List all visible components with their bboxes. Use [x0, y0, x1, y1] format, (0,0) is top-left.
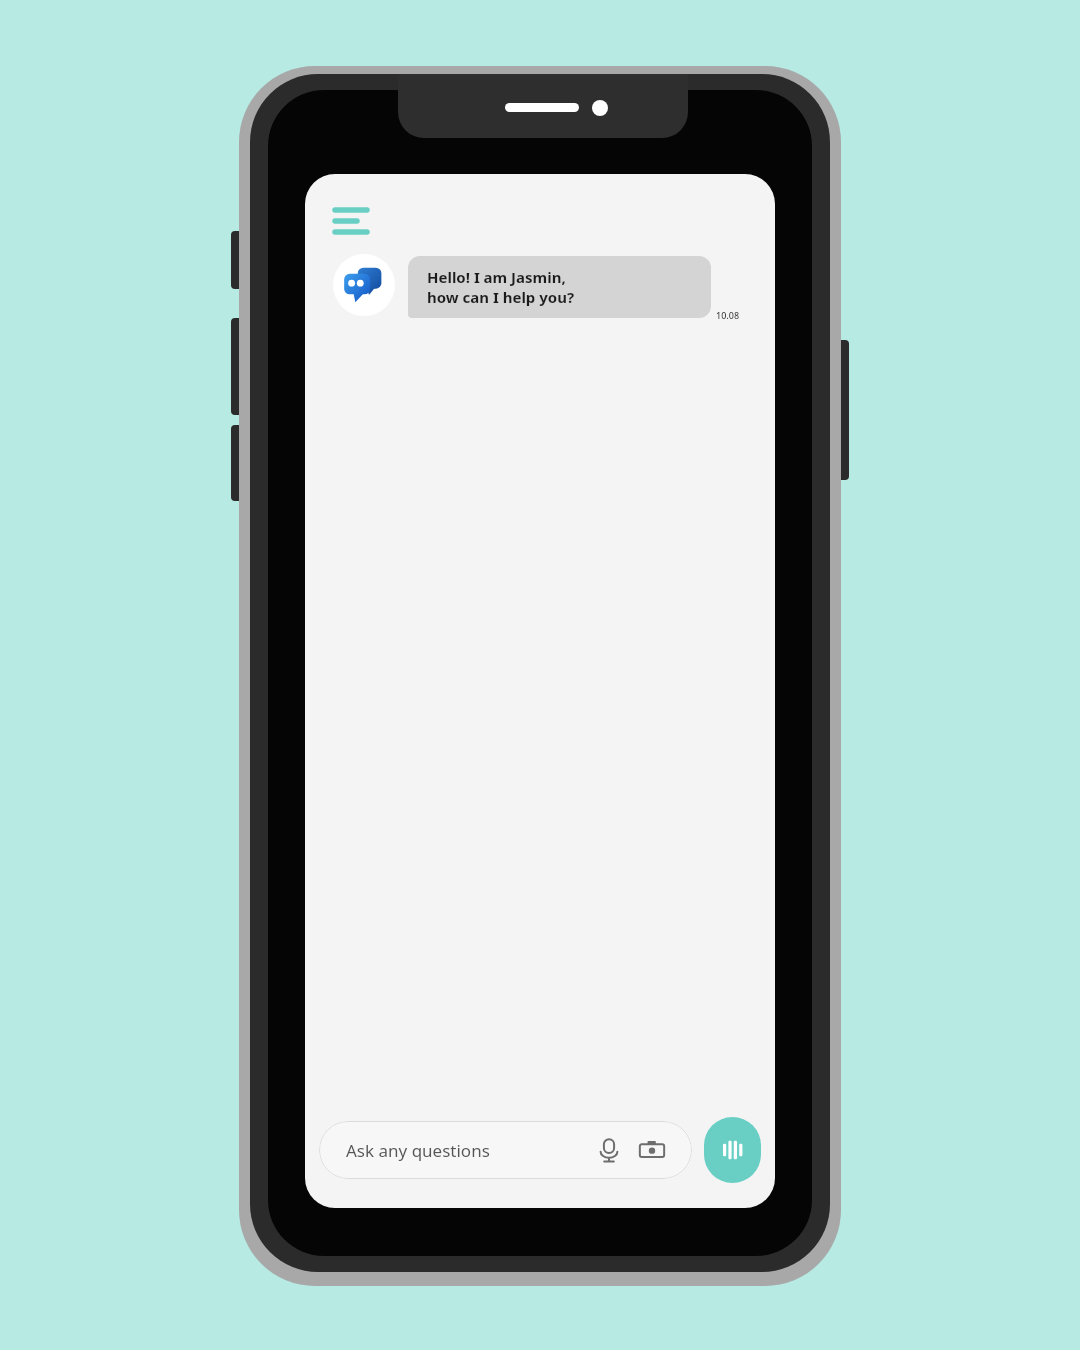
staticText: Hello! I am Jasmin, [427, 267, 566, 287]
button[interactable]: Camera [636, 1134, 668, 1166]
button[interactable]: Menu [327, 200, 373, 242]
button[interactable]: Voice input [594, 1135, 624, 1165]
button[interactable]: Hello! I am Jasmin, [408, 256, 711, 318]
staticText: Ask any questions [346, 1139, 490, 1162]
button[interactable]: Jasmin avatar [333, 254, 395, 316]
staticText: how can I help you? [427, 287, 575, 307]
button[interactable]: Ask any questions [319, 1121, 692, 1179]
button[interactable]: Voice assistant [704, 1117, 761, 1183]
staticText: 10.08 [716, 309, 740, 321]
